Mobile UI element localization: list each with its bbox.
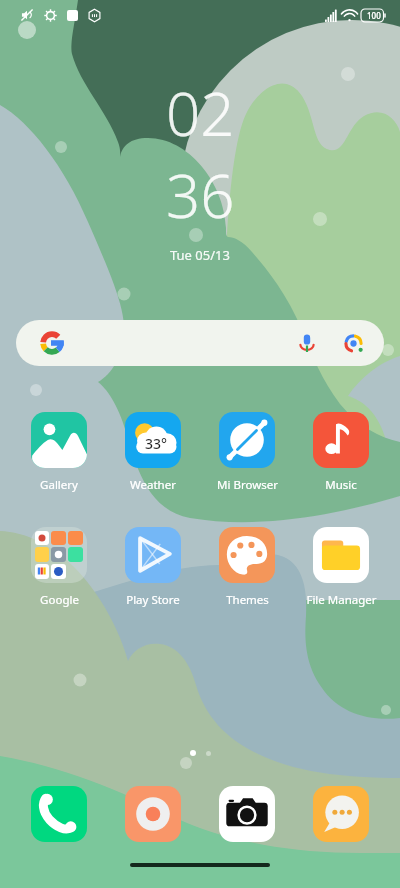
- button[interactable]: Browser: [125, 786, 181, 842]
- button[interactable]: Messages: [313, 786, 369, 842]
- staticText: Themes: [226, 592, 269, 608]
- staticText: Music: [325, 477, 357, 493]
- button[interactable]: Play Store: [106, 527, 200, 608]
- button[interactable]: Gallery: [12, 412, 106, 493]
- staticText: 36: [166, 154, 235, 236]
- button[interactable]: 33°: [106, 412, 200, 493]
- staticText: Mi Browser: [217, 477, 278, 493]
- button[interactable]: Camera: [219, 786, 275, 842]
- staticText: 02: [166, 72, 235, 154]
- staticText: Google: [40, 592, 79, 608]
- button[interactable]: Google: [12, 527, 106, 608]
- button[interactable]: [16, 320, 384, 366]
- button[interactable]: Themes: [200, 527, 294, 608]
- staticText: Play Store: [126, 592, 180, 608]
- button[interactable]: Music: [294, 412, 388, 493]
- staticText: Tue 05/13: [170, 246, 230, 264]
- staticText: 100: [367, 10, 381, 21]
- button[interactable]: Phone: [31, 786, 87, 842]
- staticText: 33°: [145, 434, 167, 453]
- button[interactable]: File Manager: [294, 527, 388, 608]
- button[interactable]: Mi Browser: [200, 412, 294, 493]
- staticText: File Manager: [306, 592, 377, 608]
- staticText: Gallery: [40, 477, 78, 493]
- staticText: Weather: [130, 477, 176, 493]
